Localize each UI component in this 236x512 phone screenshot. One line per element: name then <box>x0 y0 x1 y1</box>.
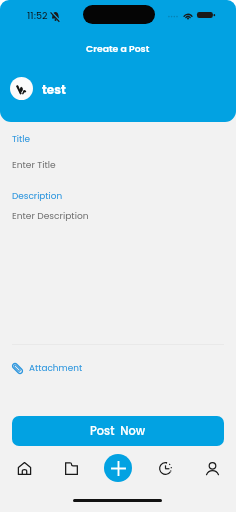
staticText: Enter Title <box>12 158 56 171</box>
button[interactable]: Files <box>53 450 89 486</box>
staticText: Title <box>12 133 30 145</box>
button[interactable]: Create a post <box>104 454 132 482</box>
staticText: Enter Description <box>12 209 89 222</box>
staticText: Create a Post <box>86 42 150 55</box>
button[interactable]: Home <box>6 450 42 486</box>
staticText: Description <box>12 190 63 202</box>
button[interactable]: Profile <box>194 450 230 486</box>
staticText: test <box>42 81 66 98</box>
staticText: Post Now <box>90 423 146 439</box>
button[interactable]: Post Now <box>12 416 224 446</box>
staticText: Attachment <box>29 362 83 374</box>
button[interactable]: History <box>147 450 183 486</box>
staticText: 11:52 <box>27 9 48 22</box>
button[interactable]: Attachment <box>0 356 236 380</box>
